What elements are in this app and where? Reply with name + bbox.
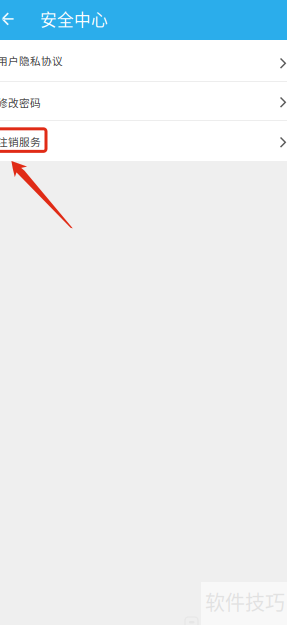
staticText: 软件技巧 — [205, 587, 285, 616]
button[interactable]: 用户隐私协议 — [0, 40, 287, 81]
staticText: 修改密码 — [0, 95, 41, 110]
button[interactable]: 注销服务 — [0, 121, 287, 161]
button[interactable]: Back — [0, 0, 36, 40]
staticText: 注销服务 — [0, 134, 41, 149]
staticText: 用户隐私协议 — [0, 53, 63, 68]
button[interactable]: 修改密码 — [0, 82, 287, 120]
staticText: 安全中心 — [40, 7, 108, 31]
